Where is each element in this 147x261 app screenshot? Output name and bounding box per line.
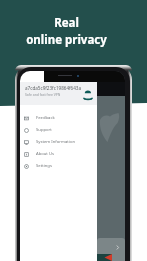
staticText: Safe and fast free VPN bbox=[25, 92, 61, 97]
staticText: Support bbox=[36, 127, 52, 133]
staticText: a7cda5c9f23fc19864f643a bbox=[25, 85, 82, 91]
button[interactable]: More bbox=[97, 238, 125, 261]
button[interactable]: Settings bbox=[20, 160, 97, 172]
button[interactable]: About Us bbox=[20, 148, 97, 160]
staticText: online privacy bbox=[26, 32, 107, 48]
staticText: About Us bbox=[36, 151, 55, 157]
staticText: Real bbox=[54, 15, 79, 31]
staticText: Settings bbox=[36, 163, 52, 169]
staticText: Feedback bbox=[36, 115, 55, 121]
other: More bbox=[115, 245, 120, 250]
staticText: System Information bbox=[36, 139, 76, 145]
button[interactable]: System Information bbox=[20, 136, 97, 148]
button[interactable]: Feedback bbox=[20, 112, 97, 124]
button[interactable]: Support bbox=[20, 124, 97, 136]
